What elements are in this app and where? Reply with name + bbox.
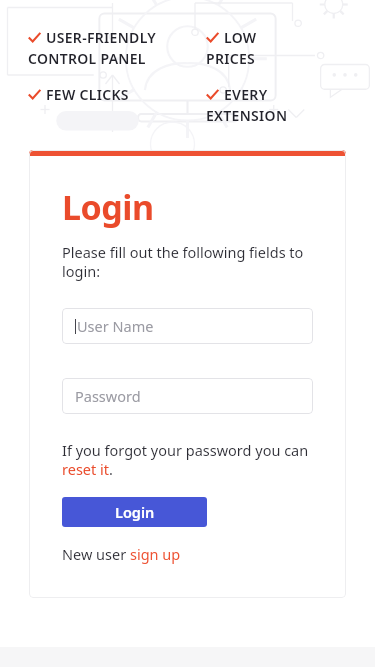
staticText: LOW — [224, 28, 257, 47]
staticText: FEW CLICKS — [46, 85, 129, 104]
button[interactable]: User Name — [62, 308, 313, 344]
staticText: sign up — [130, 544, 181, 564]
staticText: Login — [115, 502, 155, 522]
staticText: USER-FRIENDLY — [46, 28, 156, 47]
button[interactable]: sign up — [130, 544, 181, 564]
staticText: EVERY — [224, 85, 268, 104]
staticText: Password — [75, 386, 141, 406]
staticText: EXTENSION — [206, 106, 288, 125]
staticText: CONTROL PANEL — [28, 49, 146, 68]
button[interactable]: Login — [62, 497, 207, 527]
staticText: New user — [62, 544, 130, 564]
staticText: If you forgot your password you can rese… — [62, 440, 313, 480]
staticText: User Name — [77, 316, 154, 336]
staticText: Login — [62, 184, 154, 230]
button[interactable]: Password — [62, 378, 313, 414]
staticText: Please fill out the following fields to … — [62, 242, 313, 282]
staticText: PRICES — [206, 49, 256, 68]
